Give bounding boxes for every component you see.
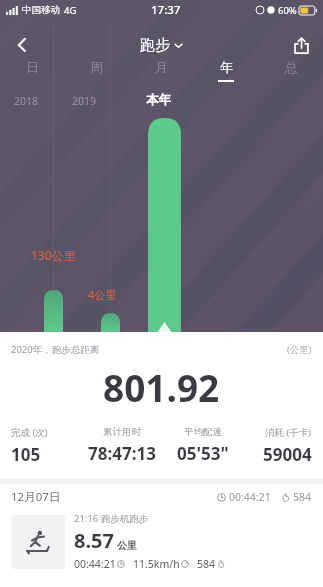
staticText: 累计用时 (103, 426, 141, 438)
staticText: 105 (11, 443, 41, 466)
staticText: 2019 (72, 94, 97, 108)
staticText: 跑步 (140, 36, 170, 55)
staticText: 801.92 (103, 362, 220, 412)
staticText: 584 (293, 490, 312, 504)
staticText: 00:44:21 (74, 557, 116, 571)
staticText: 130公里 (31, 247, 76, 263)
staticText: 8.57 (74, 527, 114, 554)
staticText: 中国移动 (22, 4, 60, 16)
staticText: 4公里 (88, 287, 117, 302)
staticText: 00:44:21 (229, 490, 271, 504)
staticText: 17:37 (151, 2, 181, 18)
staticText: 公里 (117, 539, 137, 552)
staticText: 78:47:13 (88, 442, 156, 465)
staticText: 05'53" (177, 442, 229, 465)
button[interactable]: 总 (258, 53, 323, 87)
button[interactable]: 日 (0, 53, 64, 87)
staticText: 月 (155, 59, 168, 75)
staticText: 平均配速 (184, 426, 222, 438)
staticText: 59004 (263, 443, 312, 466)
staticText: 完成 (次) (11, 426, 48, 439)
staticText: 消耗 (千卡) (265, 426, 312, 439)
staticText: 4G (64, 4, 77, 17)
button[interactable]: 周 (64, 53, 128, 87)
staticText: 本年 (146, 92, 171, 108)
staticText: 2018 (14, 94, 39, 108)
button[interactable]: 跑步 (140, 36, 183, 55)
staticText: 日 (26, 59, 39, 75)
staticText: 周 (90, 59, 103, 75)
staticText: 584 (197, 557, 216, 571)
staticText: 年 (220, 59, 233, 75)
staticText: 12月07日 (11, 489, 61, 505)
staticText: 21:16 跑步机跑步 (74, 512, 149, 525)
button[interactable]: Share (279, 23, 323, 67)
button[interactable]: 21:16 跑步机跑步 (0, 510, 323, 577)
button[interactable]: 年 (193, 53, 258, 87)
staticText: 60% (278, 4, 297, 17)
staticText: (公里) (287, 343, 312, 356)
button[interactable]: 月 (128, 53, 193, 87)
button[interactable]: Back (0, 23, 44, 67)
staticText: 总 (285, 59, 298, 75)
staticText: 2020年，跑步总距离 (11, 343, 100, 356)
staticText: 11.5km/h (133, 557, 180, 571)
